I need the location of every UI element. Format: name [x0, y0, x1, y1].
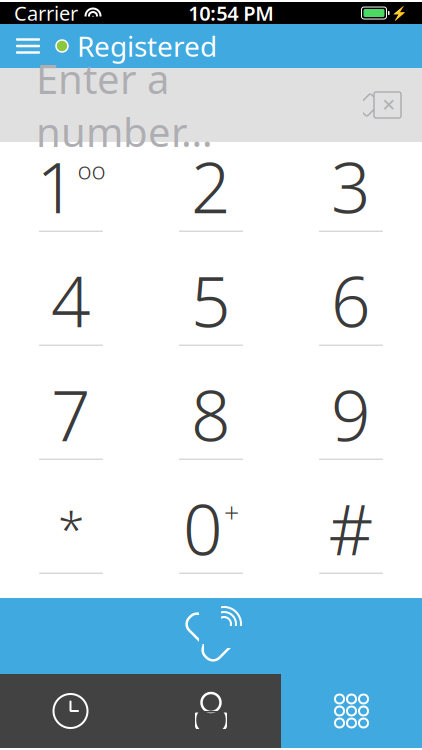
staticText: 4 [51, 254, 91, 346]
staticText: 10:54 PM [188, 0, 274, 26]
button[interactable]: 7 [1, 370, 141, 484]
staticText: Registered [77, 27, 217, 65]
staticText: 9 [331, 368, 371, 460]
staticText: Carrier [14, 0, 78, 26]
button[interactable]: Recents [0, 674, 141, 748]
staticText: 5 [191, 254, 231, 346]
button[interactable]: Registered [50, 25, 223, 67]
staticText: 3 [331, 140, 371, 232]
button[interactable]: Delete [354, 81, 410, 129]
button[interactable]: 9 [281, 370, 421, 484]
staticText: 0 [183, 482, 223, 574]
staticText: + [224, 494, 239, 530]
button[interactable]: Menu [6, 25, 50, 67]
staticText: 2 [191, 140, 231, 232]
button[interactable]: * [1, 484, 141, 598]
staticText: ✕ [381, 95, 396, 115]
button[interactable]: 6 [281, 256, 421, 370]
staticText: 8 [191, 368, 231, 460]
staticText: oo [77, 154, 105, 186]
button[interactable]: 8 [141, 370, 281, 484]
button[interactable]: Contacts [141, 674, 281, 748]
button[interactable]: 0 [141, 484, 281, 598]
button[interactable]: 5 [141, 256, 281, 370]
button[interactable]: 3 [281, 142, 421, 256]
staticText: 1 [36, 140, 76, 232]
button[interactable]: # [281, 484, 421, 598]
button[interactable]: Call [0, 598, 422, 674]
staticText: ⚡ [391, 5, 408, 21]
staticText: Enter a number… [36, 52, 213, 158]
staticText: # [328, 482, 373, 574]
button[interactable]: Keypad [281, 674, 422, 748]
staticText: 6 [331, 254, 371, 346]
staticText: * [58, 496, 84, 560]
staticText: 7 [51, 368, 91, 460]
button[interactable]: 4 [1, 256, 141, 370]
button[interactable]: 2 [141, 142, 281, 256]
button[interactable]: 1 [1, 142, 141, 256]
